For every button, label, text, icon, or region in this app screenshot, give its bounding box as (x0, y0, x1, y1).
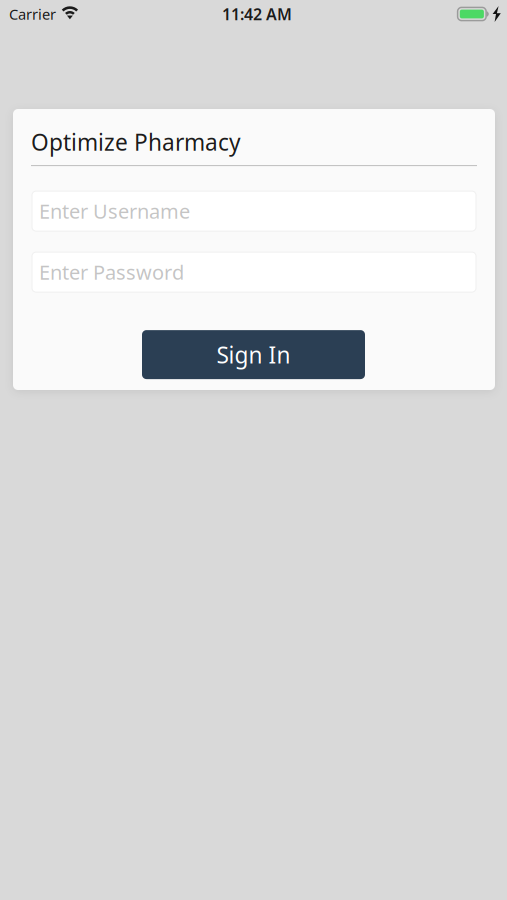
staticText: Enter Password (39, 259, 184, 285)
button[interactable]: Enter Password (32, 252, 476, 292)
staticText: Enter Username (39, 198, 190, 224)
staticText: 11:42 AM (222, 3, 292, 25)
staticText: Optimize Pharmacy (31, 127, 241, 157)
staticText: Carrier (9, 4, 56, 24)
button[interactable]: Enter Username (32, 191, 476, 231)
staticText: Sign In (216, 340, 290, 370)
button[interactable]: Sign In (142, 330, 365, 379)
